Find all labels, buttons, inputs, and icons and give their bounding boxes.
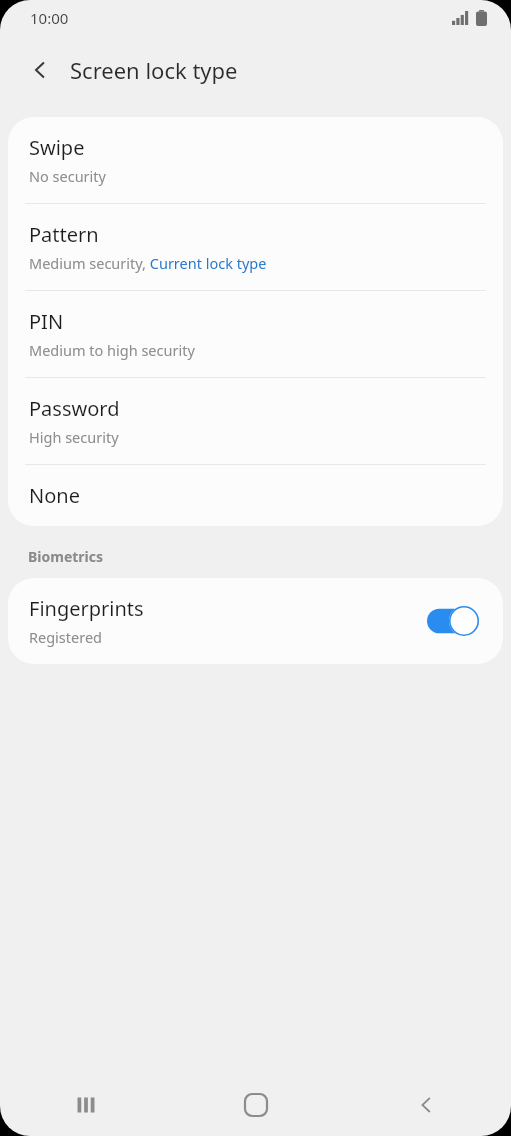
button[interactable]: PIN xyxy=(8,291,503,377)
button[interactable]: Swipe xyxy=(8,117,503,203)
staticText: No security xyxy=(29,166,106,186)
button[interactable]: Pattern xyxy=(8,204,503,290)
staticText: High security xyxy=(29,427,119,447)
staticText: None xyxy=(29,482,80,509)
button[interactable]: Home xyxy=(171,1074,341,1136)
button[interactable]: Fingerprints xyxy=(8,578,503,664)
staticText: Password xyxy=(29,395,120,422)
button[interactable]: None xyxy=(8,465,503,526)
staticText: Screen lock type xyxy=(70,55,238,85)
staticText: Medium to high security xyxy=(29,340,195,360)
button[interactable]: Fingerprints toggle xyxy=(427,606,479,636)
staticText: Fingerprints xyxy=(29,595,144,622)
staticText: 10:00 xyxy=(30,8,69,28)
staticText: Biometrics xyxy=(28,547,104,566)
staticText: Registered xyxy=(29,627,103,647)
staticText: Swipe xyxy=(29,134,85,161)
button[interactable]: Password xyxy=(8,378,503,464)
button[interactable]: Back xyxy=(341,1074,511,1136)
button[interactable]: Back xyxy=(16,46,64,94)
staticText: Medium security, Current lock type xyxy=(29,253,267,273)
button[interactable]: Recent apps xyxy=(0,1074,171,1136)
staticText: Pattern xyxy=(29,221,99,248)
staticText: PIN xyxy=(29,308,64,335)
